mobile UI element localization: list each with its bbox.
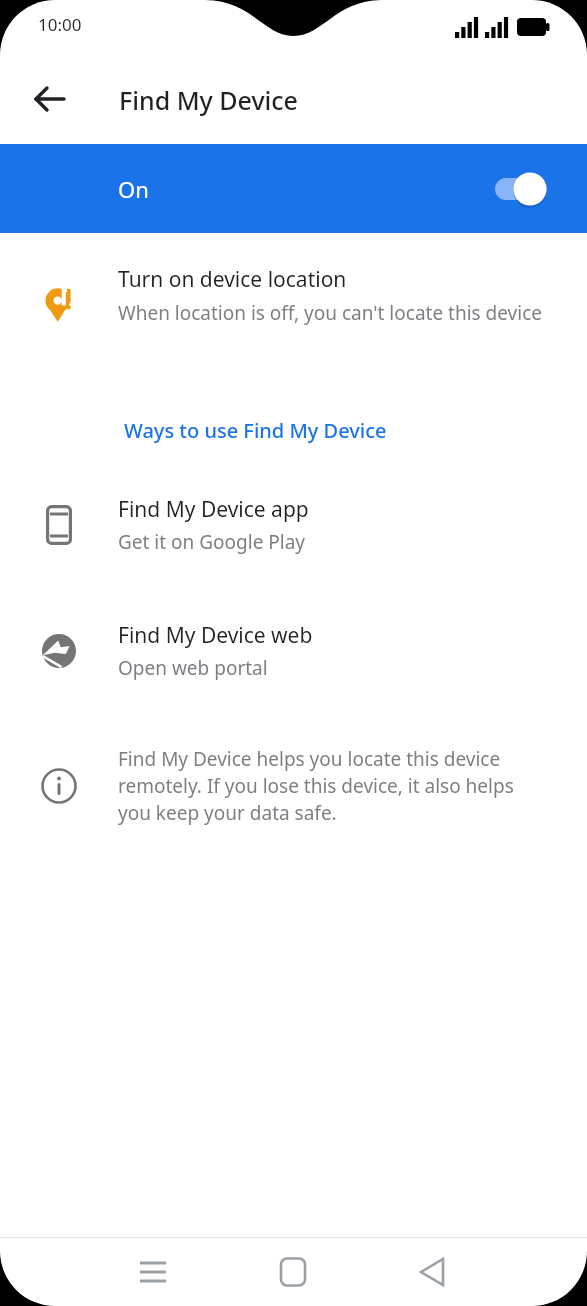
staticText: Find My Device app bbox=[118, 495, 309, 524]
button[interactable]: On bbox=[0, 144, 587, 233]
staticText: Ways to use Find My Device bbox=[124, 417, 387, 444]
button[interactable]: Recents bbox=[123, 1242, 183, 1302]
staticText: Find My Device helps you locate this dev… bbox=[118, 746, 547, 826]
button[interactable]: Ways to use Find My Device bbox=[0, 417, 587, 444]
button[interactable]: Home bbox=[263, 1242, 323, 1302]
staticText: Find My Device web bbox=[118, 621, 313, 650]
button[interactable]: Back bbox=[403, 1242, 463, 1302]
button[interactable]: Find My Device app bbox=[0, 486, 587, 564]
staticText: On bbox=[118, 174, 149, 204]
staticText: Turn on device location bbox=[118, 265, 347, 294]
button[interactable]: Back bbox=[22, 71, 78, 127]
staticText: Open web portal bbox=[118, 655, 268, 681]
staticText: When location is off, you can't locate t… bbox=[118, 300, 543, 326]
button[interactable]: Find My Device web bbox=[0, 612, 587, 690]
staticText: 10:00 bbox=[38, 13, 82, 36]
button[interactable]: Turn on device location bbox=[0, 255, 587, 355]
staticText: Get it on Google Play bbox=[118, 529, 306, 555]
staticText: Find My Device bbox=[119, 83, 298, 117]
